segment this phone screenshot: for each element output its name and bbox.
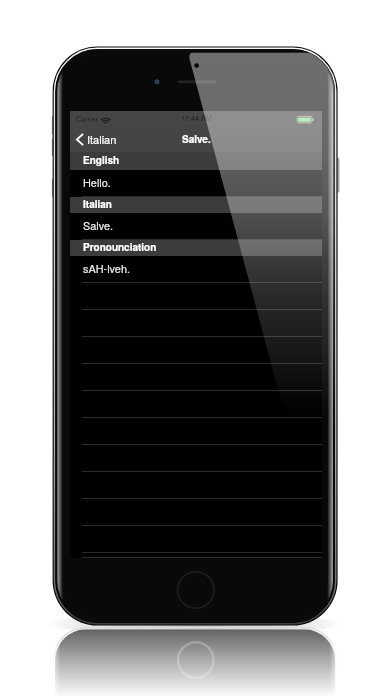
staticText: Pronounciation [83,240,157,254]
staticText: Italian [87,131,117,147]
staticText: Salve. [83,217,114,233]
staticText: Italian [83,197,112,211]
staticText: 11:44 AM [181,113,212,123]
button[interactable]: sAH-lveh. [70,256,322,283]
button[interactable]: Hello. [70,170,322,197]
other: Back [76,133,84,146]
staticText: Carrier [76,114,98,124]
staticText: English [83,153,120,167]
staticText: Hello. [83,174,111,190]
button[interactable]: Salve. [70,213,322,240]
staticText: Salve. [182,132,211,146]
button[interactable]: Back [70,127,125,151]
other: Wi-Fi [102,118,109,124]
staticText: sAH-lveh. [83,260,130,276]
